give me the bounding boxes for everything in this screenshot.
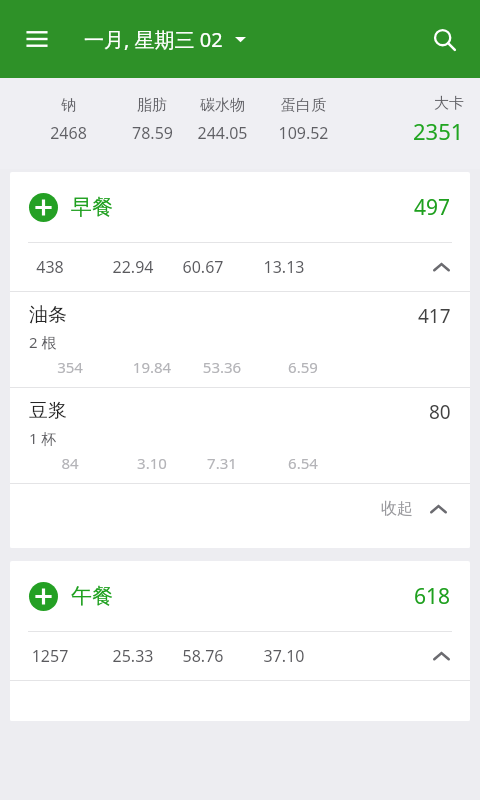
staticText: 244.05 — [197, 122, 248, 144]
staticText: 80 — [429, 399, 451, 425]
staticText: 6.54 — [258, 453, 348, 473]
staticText: 午餐 — [71, 583, 113, 609]
staticText: 78.59 — [132, 122, 173, 144]
button[interactable]: 早餐 — [10, 172, 470, 242]
staticText: 6.59 — [258, 357, 348, 377]
other: Collapse — [432, 647, 451, 666]
button[interactable]: 收起 — [10, 484, 470, 534]
button[interactable]: 午餐 — [10, 561, 470, 631]
button[interactable]: 豆浆 — [10, 388, 470, 483]
other: Collapse — [432, 258, 451, 277]
staticText: 109.52 — [278, 122, 329, 144]
staticText: 58.76 — [158, 645, 248, 667]
staticText: 354 — [25, 357, 115, 377]
button[interactable]: 1257 — [10, 632, 470, 680]
staticText: 豆浆 — [29, 399, 67, 423]
staticText: 60.67 — [158, 256, 248, 278]
staticText: 碳水物 — [200, 96, 245, 115]
staticText: 7.31 — [177, 453, 267, 473]
staticText: 一月, 星期三 02 — [84, 26, 223, 53]
staticText: 84 — [25, 453, 115, 473]
staticText: 1 杯 — [29, 428, 57, 448]
staticText: 22.94 — [88, 256, 178, 278]
staticText: 438 — [10, 256, 95, 278]
button[interactable]: Search — [420, 15, 468, 63]
staticText: 417 — [418, 303, 451, 329]
staticText: 3.10 — [107, 453, 197, 473]
staticText: 13.13 — [239, 256, 329, 278]
staticText: 2 根 — [29, 332, 57, 352]
staticText: 2468 — [50, 122, 87, 144]
staticText: 蛋白质 — [281, 96, 326, 115]
button[interactable]: 一月, 星期三 02 — [84, 26, 246, 53]
staticText: 钠 — [61, 96, 76, 115]
staticText: 618 — [414, 582, 451, 611]
staticText: 2351 — [413, 116, 464, 146]
staticText: 早餐 — [71, 194, 113, 220]
button[interactable]: Menu — [14, 16, 60, 62]
staticText: 25.33 — [88, 645, 178, 667]
staticText: 收起 — [381, 499, 413, 519]
staticText: 油条 — [29, 303, 67, 327]
staticText: 19.84 — [107, 357, 197, 377]
staticText: 大卡 — [434, 94, 464, 113]
staticText: 37.10 — [239, 645, 329, 667]
staticText: 53.36 — [177, 357, 267, 377]
button[interactable]: 油条 — [10, 292, 470, 387]
staticText: 1257 — [10, 645, 95, 667]
staticText: 497 — [414, 193, 451, 222]
button[interactable]: 438 — [10, 243, 470, 291]
staticText: 脂肪 — [137, 96, 167, 115]
